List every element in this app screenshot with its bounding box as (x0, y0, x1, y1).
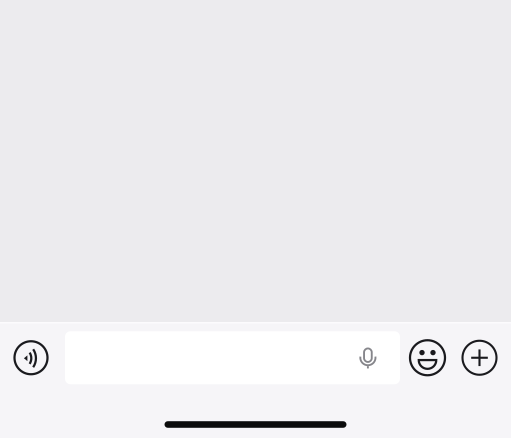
button[interactable]: Voice message (0, 331, 65, 384)
button[interactable]: More (462, 331, 511, 384)
button[interactable]: Emoji (400, 331, 462, 384)
button[interactable]: Message (65, 331, 400, 384)
